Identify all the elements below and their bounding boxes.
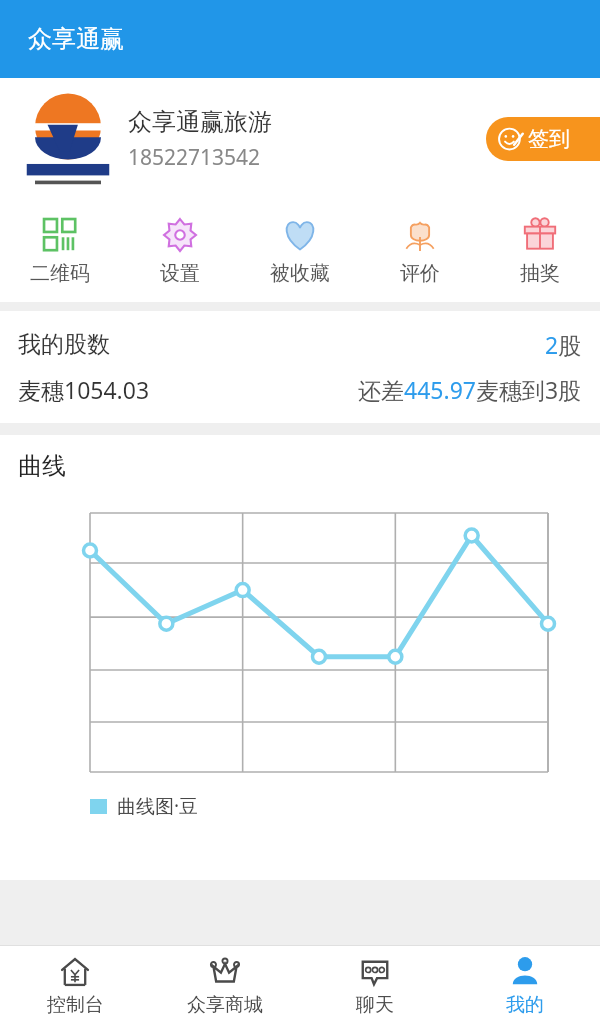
staticText: 二维码 (30, 261, 90, 286)
button[interactable]: 签到 (486, 117, 600, 161)
button[interactable]: 众享商城 (150, 945, 300, 1026)
staticText: 曲线 (18, 451, 66, 481)
staticText: 抽奖 (520, 261, 560, 286)
staticText: 还差445.97麦穗到3股 (358, 374, 582, 405)
staticText: 我的股数 (18, 330, 110, 359)
staticText: 众享商城 (187, 993, 263, 1017)
button[interactable]: 评价 (360, 200, 480, 302)
staticText: 控制台 (47, 993, 104, 1017)
staticText: 众享通赢 (28, 24, 124, 54)
staticText: 我的 (506, 993, 544, 1017)
button[interactable]: 我的 (450, 945, 600, 1026)
staticText: 18522713542 (128, 143, 261, 172)
staticText: 签到 (528, 126, 570, 152)
button[interactable]: 控制台 (0, 945, 150, 1026)
staticText: 设置 (160, 261, 200, 286)
button[interactable]: 被收藏 (240, 200, 360, 302)
staticText: 2股 (545, 329, 582, 360)
staticText: 众享通赢旅游 (128, 107, 272, 137)
staticText: 麦穗1054.03 (18, 374, 150, 405)
button[interactable]: 二维码 (0, 200, 120, 302)
button[interactable]: 设置 (120, 200, 240, 302)
button[interactable]: 聊天 (300, 945, 450, 1026)
staticText: 曲线图·豆 (117, 793, 199, 819)
staticText: 评价 (400, 261, 440, 286)
staticText: 被收藏 (270, 261, 330, 286)
button[interactable]: 抽奖 (480, 200, 600, 302)
staticText: 聊天 (356, 993, 394, 1017)
